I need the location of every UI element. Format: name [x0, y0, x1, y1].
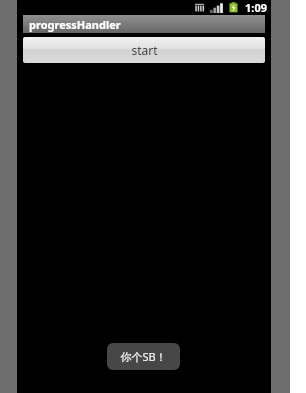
- other: Signal strength: [210, 2, 223, 13]
- button[interactable]: start: [23, 37, 265, 63]
- staticText: progressHandler: [29, 17, 121, 32]
- staticText: 1:09: [245, 0, 267, 15]
- other: Storage: [194, 2, 205, 13]
- staticText: start: [131, 42, 158, 58]
- staticText: 你个SB！: [120, 349, 167, 364]
- other: Battery charging: [228, 2, 239, 13]
